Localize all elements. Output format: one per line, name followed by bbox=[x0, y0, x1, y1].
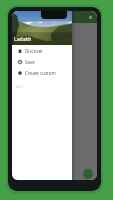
staticText: Create custom bbox=[25, 70, 56, 76]
button[interactable]: Discover bbox=[12, 45, 72, 56]
button[interactable]: Create custom bbox=[12, 67, 72, 78]
button[interactable]: Add bbox=[83, 169, 93, 179]
staticText: Save bbox=[25, 59, 35, 65]
staticText: v0.1 bbox=[16, 84, 24, 89]
staticText: Ladakh bbox=[14, 36, 32, 43]
staticText: Discover bbox=[25, 48, 44, 54]
button[interactable]: Save bbox=[12, 56, 72, 67]
